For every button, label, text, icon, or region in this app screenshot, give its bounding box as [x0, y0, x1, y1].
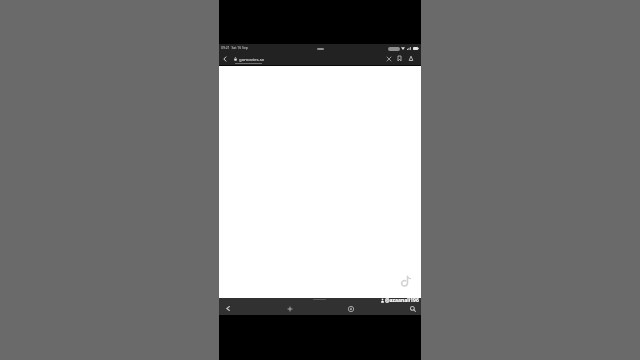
button[interactable]: Bookmark: [394, 53, 405, 64]
button[interactable]: Share: [405, 53, 416, 64]
button[interactable]: Back: [218, 52, 231, 65]
staticText: gomovies.sx: [239, 56, 265, 62]
button[interactable]: Profile: [342, 300, 359, 317]
staticText: @azaanali196: [385, 297, 419, 304]
button[interactable]: New tab: [281, 300, 298, 317]
staticText: 09:21 Sat 16 Sep: [221, 45, 248, 50]
button[interactable]: Search: [404, 300, 421, 317]
button[interactable]: Stop loading: [383, 53, 394, 64]
button[interactable]: Back: [219, 300, 236, 317]
